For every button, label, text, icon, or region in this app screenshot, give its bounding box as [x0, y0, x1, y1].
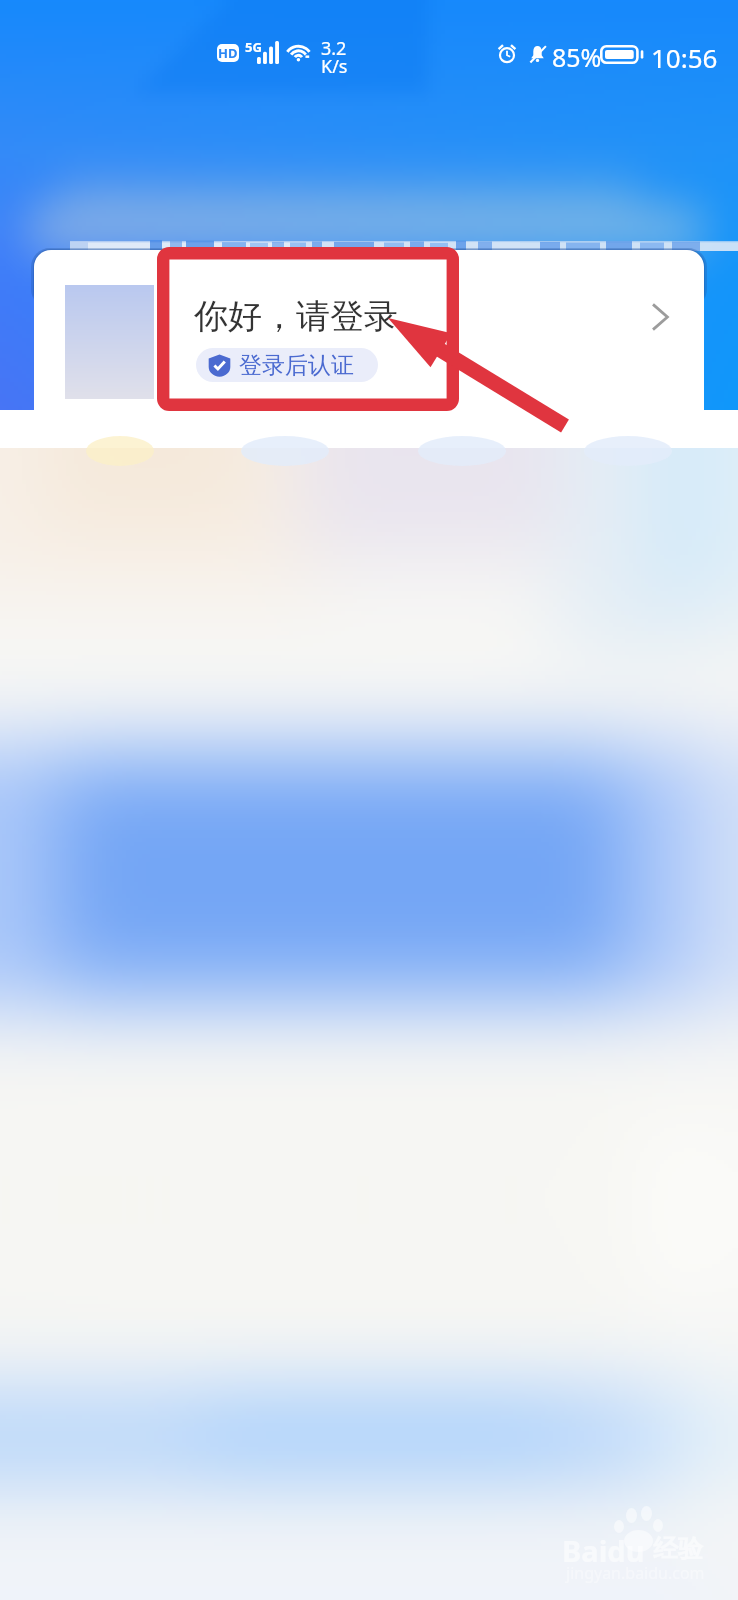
staticText: K/s: [321, 54, 348, 79]
button[interactable]: Open account: [630, 288, 688, 346]
button[interactable]: [34, 250, 704, 446]
staticText: 你好，请登录: [194, 295, 398, 338]
staticText: Baidu: [562, 1531, 645, 1570]
staticText: HD: [218, 44, 238, 62]
staticText: 5G: [245, 38, 262, 56]
staticText: 登录后认证: [239, 351, 354, 380]
staticText: 10:56: [651, 40, 718, 75]
staticText: 经验: [653, 1533, 703, 1564]
button[interactable]: 登录后认证: [196, 348, 378, 382]
staticText: 85%: [552, 40, 602, 74]
staticText: 3.2: [321, 36, 347, 61]
